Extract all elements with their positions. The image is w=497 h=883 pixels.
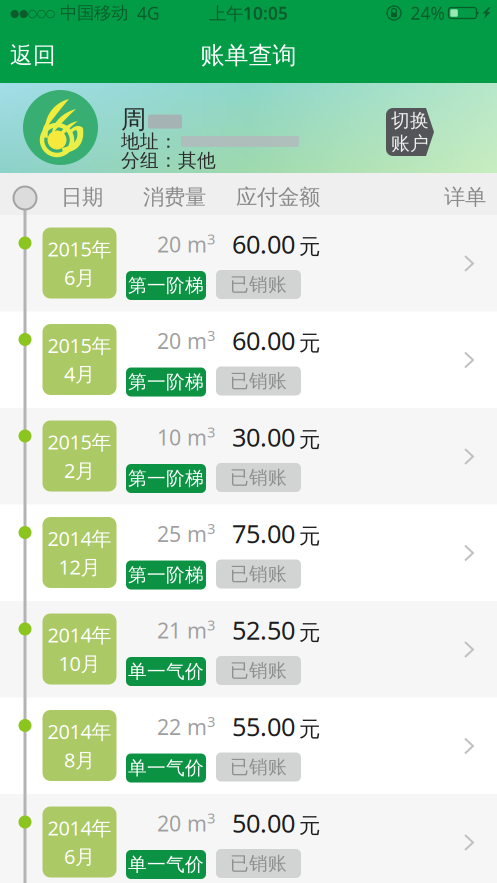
staticText: 已销账 (230, 852, 287, 875)
staticText: 20 m (157, 326, 207, 355)
staticText: 2014年 (47, 718, 111, 744)
staticText: 8月 (64, 746, 95, 773)
staticText: 20 m (157, 809, 207, 837)
staticText: 第一阶梯 (128, 370, 204, 393)
staticText: 已销账 (230, 562, 287, 585)
staticText: 2014年 (47, 814, 111, 841)
staticText: 详单 (444, 184, 486, 210)
staticText: 2015年 (47, 235, 111, 262)
staticText: 10 m (157, 423, 207, 451)
staticText: 第一阶梯 (128, 467, 204, 490)
staticText: 60.00 (232, 323, 295, 357)
staticText: 单一气价 (128, 660, 204, 683)
staticText: 周 (121, 104, 146, 135)
staticText: 52.50 (232, 613, 295, 647)
staticText: 单一气价 (128, 853, 204, 876)
staticText: 消费量 (143, 184, 206, 210)
staticText: 12月 (58, 553, 100, 580)
staticText: 4月 (64, 360, 95, 387)
staticText: 元 (299, 330, 320, 356)
staticText: ○○○ (28, 7, 55, 19)
staticText: 3 (207, 422, 215, 441)
staticText: 第一阶梯 (128, 563, 204, 586)
staticText: 已销账 (230, 755, 287, 778)
staticText: 2014年 (47, 621, 111, 648)
staticText: 已销账 (230, 466, 287, 489)
staticText: 2015年 (47, 428, 111, 455)
staticText: 元 (299, 523, 320, 549)
staticText: 返回 (10, 42, 56, 69)
staticText: 22 m (157, 712, 207, 741)
staticText: 地址： (121, 130, 178, 153)
staticText: 应付金额 (236, 184, 320, 210)
staticText: 已销账 (230, 369, 287, 392)
staticText: 3 (207, 229, 215, 248)
staticText: 2月 (64, 457, 95, 484)
staticText: 60.00 (232, 227, 295, 261)
staticText: 3 (207, 325, 215, 345)
staticText: 6月 (64, 843, 95, 870)
button[interactable]: 2014年 (0, 504, 497, 601)
staticText: 上午10:05 (209, 1, 288, 24)
staticText: 元 (299, 426, 320, 453)
staticText: 6月 (64, 264, 95, 291)
staticText: 中国移动 (60, 2, 128, 24)
staticText: ●● (10, 7, 28, 19)
button[interactable]: 切换账户 (386, 108, 434, 156)
staticText: 75.00 (232, 516, 295, 550)
button[interactable]: 返回 (0, 32, 72, 76)
staticText: 25 m (157, 519, 207, 548)
staticText: 2014年 (47, 525, 111, 551)
staticText: 50.00 (232, 806, 295, 840)
staticText: 4G (137, 1, 160, 24)
staticText: 分组：其他 (121, 149, 216, 172)
staticText: 账单查询 (200, 41, 296, 70)
staticText: 元 (299, 812, 320, 839)
staticText: 元 (299, 716, 320, 742)
staticText: 元 (299, 619, 320, 646)
staticText: 55.00 (232, 709, 295, 743)
staticText: 3 (207, 615, 215, 634)
staticText: 第一阶梯 (128, 274, 204, 297)
staticText: 10月 (58, 650, 100, 677)
staticText: 3 (207, 711, 215, 731)
staticText: 20 m (157, 230, 207, 258)
staticText: 3 (207, 518, 215, 538)
button[interactable]: 2014年 (0, 601, 497, 697)
staticText: 单一气价 (128, 756, 204, 779)
staticText: 3 (207, 808, 215, 827)
staticText: 元 (299, 233, 320, 260)
staticText: 切换 (391, 109, 429, 132)
button[interactable]: 2015年 (0, 215, 497, 311)
button[interactable]: 2014年 (0, 697, 497, 794)
staticText: 账户 (391, 132, 429, 155)
staticText: 已销账 (230, 273, 287, 296)
button[interactable]: 2014年 (0, 794, 497, 883)
staticText: 30.00 (232, 420, 295, 454)
staticText: 2015年 (47, 332, 111, 358)
staticText: 24% (410, 1, 444, 24)
button[interactable]: 2015年 (0, 408, 497, 504)
button[interactable]: 2015年 (0, 311, 497, 408)
staticText: 21 m (157, 616, 207, 644)
staticText: 已销账 (230, 659, 287, 682)
staticText: 日期 (61, 184, 103, 210)
